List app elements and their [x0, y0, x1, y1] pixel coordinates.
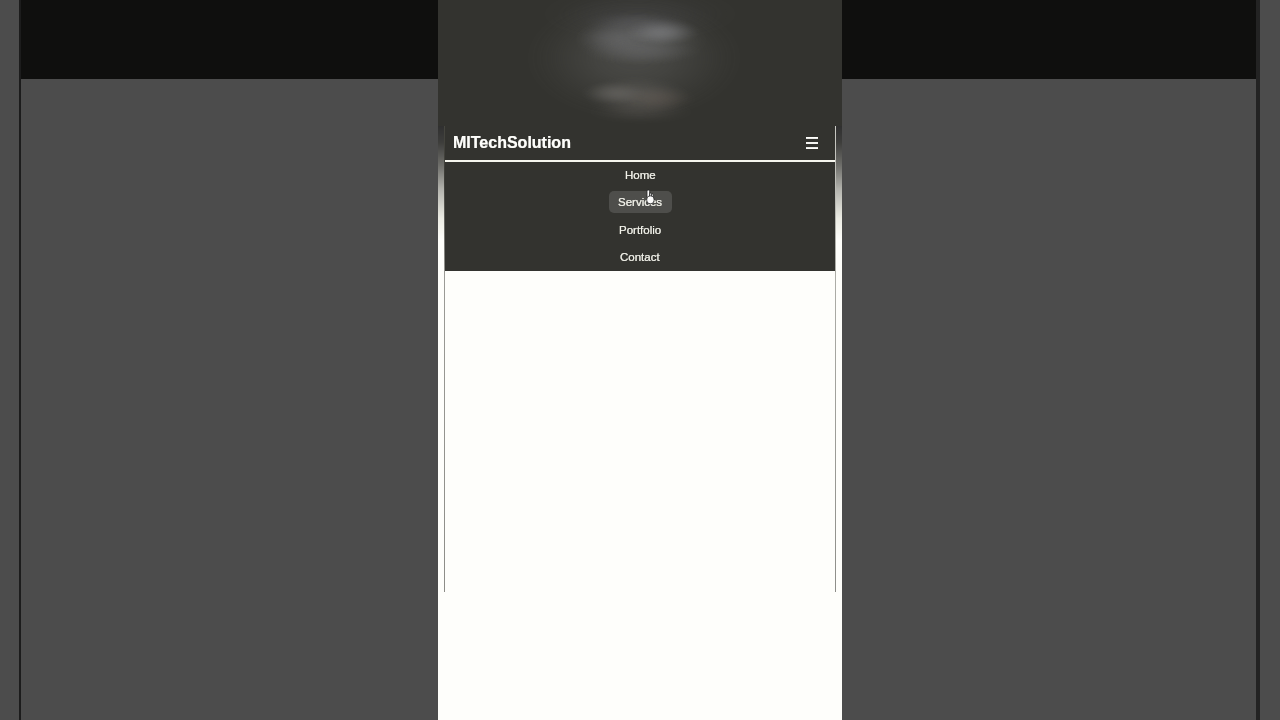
button[interactable]: Services — [609, 191, 672, 213]
button[interactable]: Portfolio — [610, 219, 671, 241]
staticText: Contact — [620, 251, 660, 264]
button[interactable]: Home — [616, 164, 665, 186]
button[interactable]: MITechSolution — [445, 126, 579, 160]
staticText: Home — [625, 169, 656, 182]
button[interactable]: Open navigation menu — [801, 132, 822, 153]
staticText: Portfolio — [619, 224, 662, 237]
staticText: MITechSolution — [453, 134, 571, 152]
button[interactable]: Contact — [611, 246, 669, 268]
staticText: Services — [618, 196, 663, 209]
